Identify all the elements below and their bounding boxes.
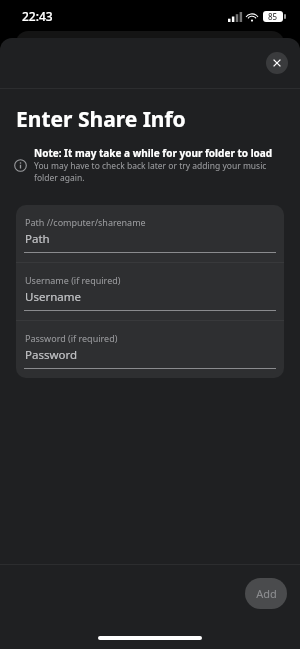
button[interactable]: Add — [245, 578, 287, 609]
staticText: 22:43 — [22, 8, 53, 24]
staticText: Username (if required) — [25, 274, 121, 286]
button[interactable]: Path //computer/sharename — [16, 205, 284, 262]
staticText: Username — [25, 289, 81, 305]
staticText: Path — [25, 231, 50, 247]
staticText: 85 — [268, 11, 278, 22]
staticText: Note: It may take a while for your folde… — [34, 146, 273, 160]
staticText: Password — [25, 347, 78, 363]
staticText: You may have to check back later or try … — [34, 160, 280, 184]
button[interactable]: Close — [266, 52, 288, 74]
staticText: Enter Share Info — [16, 105, 186, 134]
staticText: Path //computer/sharename — [25, 216, 146, 228]
staticText: Add — [256, 586, 277, 601]
button[interactable]: Password (if required) — [16, 321, 284, 378]
button[interactable]: Username (if required) — [16, 263, 284, 320]
staticText: Password (if required) — [25, 332, 118, 344]
